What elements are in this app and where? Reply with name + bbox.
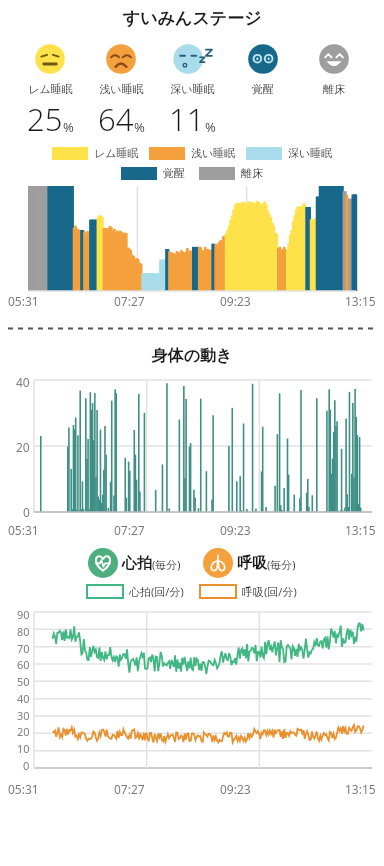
button[interactable]: 呼吸 [203, 548, 296, 578]
staticText: 20 [16, 439, 30, 455]
staticText: 60 [17, 657, 30, 672]
staticText: 深い睡眠 [170, 82, 215, 96]
staticText: 09:23 [220, 522, 251, 538]
staticText: 09:23 [220, 781, 251, 797]
staticText: 09:23 [220, 293, 251, 309]
staticText: 13:15 [345, 293, 376, 309]
staticText: 覚醒 [163, 166, 185, 180]
staticText: 浅い睡眠 [191, 146, 236, 160]
staticText: すいみんステージ [0, 8, 384, 29]
staticText: 05:31 [8, 293, 39, 309]
button[interactable]: sleep stage icon [161, 39, 223, 79]
staticText: 0 [23, 758, 30, 773]
staticText: (毎分) [152, 557, 181, 572]
staticText: 80 [17, 624, 30, 639]
staticText: 25 [27, 98, 63, 140]
staticText: 05:31 [8, 522, 39, 538]
staticText: 20 [17, 724, 30, 739]
staticText: 40 [17, 691, 30, 706]
staticText: (毎分) [267, 557, 296, 572]
button[interactable]: レム睡眠 [50, 146, 141, 160]
staticText: 50 [17, 674, 30, 689]
button[interactable]: 覚醒 [119, 166, 187, 180]
button[interactable]: sleep stage icon [19, 39, 81, 79]
staticText: 07:27 [114, 781, 145, 797]
staticText: レム睡眠 [28, 82, 73, 96]
button[interactable]: 心拍(回/分) [85, 584, 186, 599]
staticText: 05:31 [8, 781, 39, 797]
button[interactable]: sleep stage icon [90, 39, 152, 79]
staticText: 心拍(回/分) [129, 584, 184, 599]
button[interactable]: 深い睡眠 [244, 146, 335, 160]
staticText: 呼吸 [237, 554, 267, 573]
staticText: 11 [169, 98, 205, 140]
staticText: 呼吸(回/分) [242, 584, 297, 599]
button[interactable]: 浅い睡眠 [147, 146, 238, 160]
staticText: % [63, 118, 74, 136]
staticText: 07:27 [114, 293, 145, 309]
staticText: 40 [16, 374, 30, 390]
staticText: 身体の動き [0, 346, 384, 366]
staticText: レム睡眠 [94, 146, 139, 160]
staticText: % [205, 118, 216, 136]
staticText: 70 [17, 641, 30, 656]
staticText: 覚醒 [252, 82, 274, 96]
button[interactable]: Body movement chart [34, 380, 372, 512]
staticText: 13:15 [345, 522, 376, 538]
button[interactable]: 呼吸(回/分) [198, 584, 299, 599]
button[interactable]: 離床 [197, 166, 265, 180]
button[interactable]: Sleep stage chart [28, 186, 356, 291]
staticText: % [134, 118, 145, 136]
staticText: 07:27 [114, 522, 145, 538]
staticText: 離床 [323, 82, 345, 96]
button[interactable]: sleep stage icon [232, 39, 294, 79]
staticText: 浅い睡眠 [99, 82, 144, 96]
button[interactable]: 心拍 [88, 548, 181, 578]
staticText: 90 [17, 607, 30, 622]
staticText: 30 [17, 708, 30, 723]
staticText: 10 [17, 741, 30, 756]
staticText: 深い睡眠 [288, 146, 333, 160]
staticText: 心拍 [122, 554, 152, 573]
staticText: 0 [23, 504, 30, 520]
staticText: 離床 [241, 166, 263, 180]
staticText: 64 [98, 98, 134, 140]
staticText: 13:15 [345, 781, 376, 797]
button[interactable]: Heart rate and breathing chart [34, 612, 372, 768]
button[interactable]: sleep stage icon [303, 39, 365, 79]
